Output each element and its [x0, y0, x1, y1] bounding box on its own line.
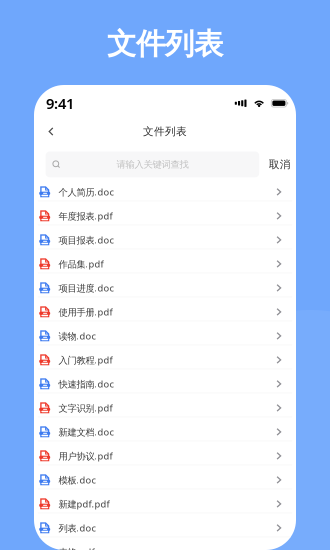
button[interactable]: 取消: [265, 151, 295, 177]
button[interactable]: 读物.doc: [34, 321, 296, 345]
button[interactable]: 列表.doc: [34, 513, 296, 537]
staticText: 快速指南.doc: [58, 378, 113, 390]
staticText: 文件列表: [107, 26, 223, 62]
button[interactable]: 入门教程.pdf: [34, 345, 296, 369]
button[interactable]: 新建pdf.pdf: [34, 489, 296, 513]
staticText: 模板.doc: [58, 474, 95, 486]
staticText: 取消: [269, 158, 291, 171]
button[interactable]: 表格.pdf: [34, 537, 296, 550]
staticText: 新建pdf.pdf: [58, 498, 109, 510]
button[interactable]: 年度报表.pdf: [34, 201, 296, 225]
button[interactable]: 使用手册.pdf: [34, 297, 296, 321]
staticText: 项目报表.doc: [58, 234, 113, 246]
staticText: 文字识别.pdf: [58, 402, 112, 414]
button[interactable]: 作品集.pdf: [34, 249, 296, 273]
button[interactable]: 个人简历.doc: [34, 177, 296, 201]
staticText: 使用手册.pdf: [58, 306, 112, 318]
staticText: 请输入关键词查找: [116, 159, 188, 170]
staticText: 表格.pdf: [58, 546, 94, 550]
button[interactable]: Back: [34, 120, 65, 143]
staticText: 入门教程.pdf: [58, 354, 112, 366]
staticText: 读物.doc: [58, 330, 95, 342]
button[interactable]: 新建文档.doc: [34, 417, 296, 441]
staticText: 年度报表.pdf: [58, 210, 112, 222]
button[interactable]: 用户协议.pdf: [34, 441, 296, 465]
staticText: 列表.doc: [58, 522, 95, 534]
staticText: 用户协议.pdf: [58, 450, 112, 462]
button[interactable]: 项目报表.doc: [34, 225, 296, 249]
staticText: 个人简历.doc: [58, 186, 113, 198]
button[interactable]: 项目进度.doc: [34, 273, 296, 297]
button[interactable]: 模板.doc: [34, 465, 296, 489]
staticText: 9:41: [46, 93, 74, 113]
button[interactable]: 文字识别.pdf: [34, 393, 296, 417]
staticText: 新建文档.doc: [58, 426, 113, 438]
staticText: 作品集.pdf: [58, 258, 103, 270]
staticText: 项目进度.doc: [58, 282, 113, 294]
staticText: 文件列表: [143, 125, 187, 138]
button[interactable]: 快速指南.doc: [34, 369, 296, 393]
